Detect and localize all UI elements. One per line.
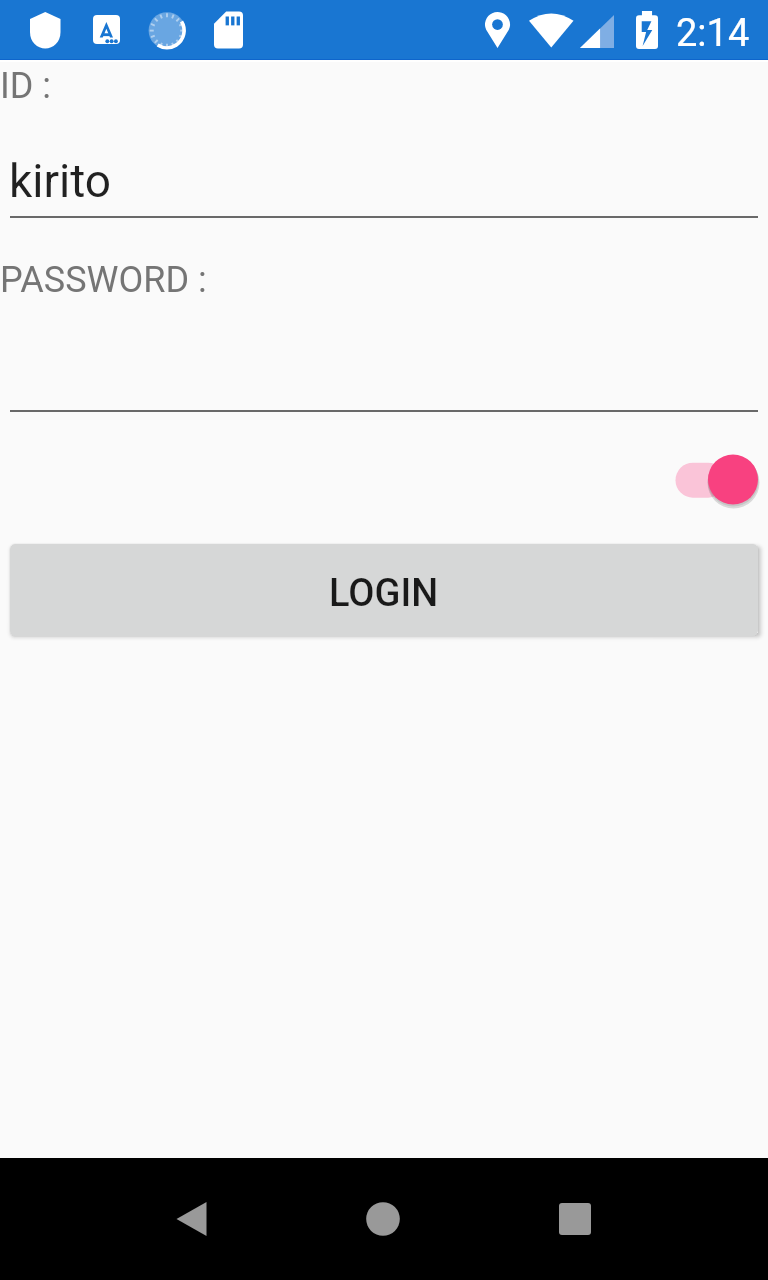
button[interactable]: Password [10, 312, 758, 412]
button[interactable]: kirito [10, 118, 758, 218]
staticText: kirito [9, 154, 112, 208]
button[interactable]: Show password [666, 444, 762, 516]
button[interactable]: Recent apps [525, 1158, 625, 1280]
button[interactable]: LOGIN [10, 544, 758, 636]
button[interactable]: Home [333, 1158, 433, 1280]
staticText: LOGIN [329, 571, 439, 616]
staticText: ID : [0, 65, 52, 107]
button[interactable]: Back [140, 1158, 240, 1280]
staticText: 2:14 [676, 11, 750, 56]
staticText: PASSWORD : [0, 259, 207, 301]
